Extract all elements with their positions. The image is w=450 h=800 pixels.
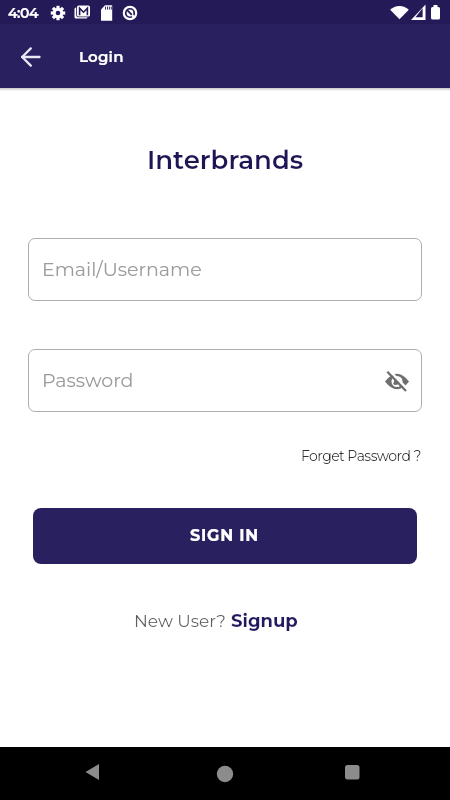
- staticText: Signup: [231, 610, 298, 632]
- staticText: New User?: [134, 611, 226, 632]
- staticText: Password: [42, 369, 134, 392]
- staticText: Forget Password ?: [301, 447, 421, 464]
- button[interactable]: Email/Username: [28, 238, 422, 301]
- button[interactable]: Password: [28, 349, 422, 412]
- staticText: Login: [79, 47, 124, 65]
- button[interactable]: Signup: [231, 610, 298, 632]
- staticText: Email/Username: [42, 258, 202, 281]
- button[interactable]: [0, 747, 150, 800]
- button[interactable]: [7, 33, 55, 81]
- button[interactable]: Forget Password ?: [301, 447, 421, 464]
- button[interactable]: SIGN IN: [33, 508, 417, 564]
- staticText: 4:04: [8, 4, 38, 21]
- button[interactable]: [300, 747, 450, 800]
- staticText: Interbrands: [147, 144, 304, 176]
- button[interactable]: [150, 747, 300, 800]
- staticText: SIGN IN: [190, 526, 260, 546]
- button[interactable]: [375, 359, 419, 403]
